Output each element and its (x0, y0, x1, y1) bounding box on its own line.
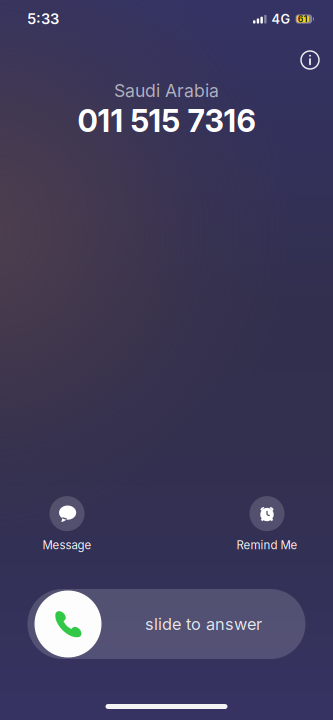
button[interactable]: Message (22, 496, 112, 552)
staticText: Remind Me (236, 538, 297, 552)
staticText: 011 515 7316 (77, 102, 255, 139)
staticText: Saudi Arabia (114, 80, 219, 101)
staticText: 61 (298, 14, 308, 24)
button[interactable]: Remind Me (222, 496, 312, 552)
staticText: 5:33 (27, 10, 59, 28)
staticText: Message (42, 538, 91, 552)
button[interactable]: Call info (294, 44, 326, 76)
staticText: 4G (272, 11, 291, 27)
staticText: slide to answer (145, 614, 262, 634)
button[interactable]: slide to answer (27, 589, 305, 659)
